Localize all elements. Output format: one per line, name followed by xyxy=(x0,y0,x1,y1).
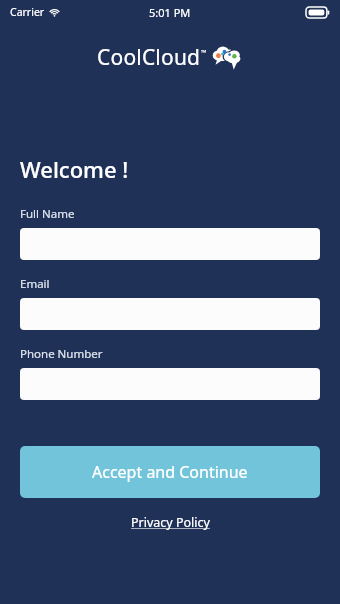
button[interactable]: Accept and Continue xyxy=(20,446,320,498)
staticText: ™ xyxy=(201,48,207,58)
staticText: Carrier xyxy=(10,5,45,19)
button[interactable]: Phone Number xyxy=(20,368,320,400)
staticText: Email xyxy=(20,276,50,292)
staticText: Phone Number xyxy=(20,346,103,362)
staticText: Welcome ! xyxy=(20,154,129,184)
staticText: Full Name xyxy=(20,206,75,222)
staticText: Privacy Policy xyxy=(131,514,210,531)
button[interactable]: Email xyxy=(20,298,320,330)
staticText: Accept and Continue xyxy=(92,461,248,483)
button[interactable]: Full Name xyxy=(20,228,320,260)
staticText: CoolCloud xyxy=(97,43,201,72)
button[interactable]: Privacy Policy xyxy=(125,511,216,534)
staticText: 5:01 PM xyxy=(149,5,191,20)
